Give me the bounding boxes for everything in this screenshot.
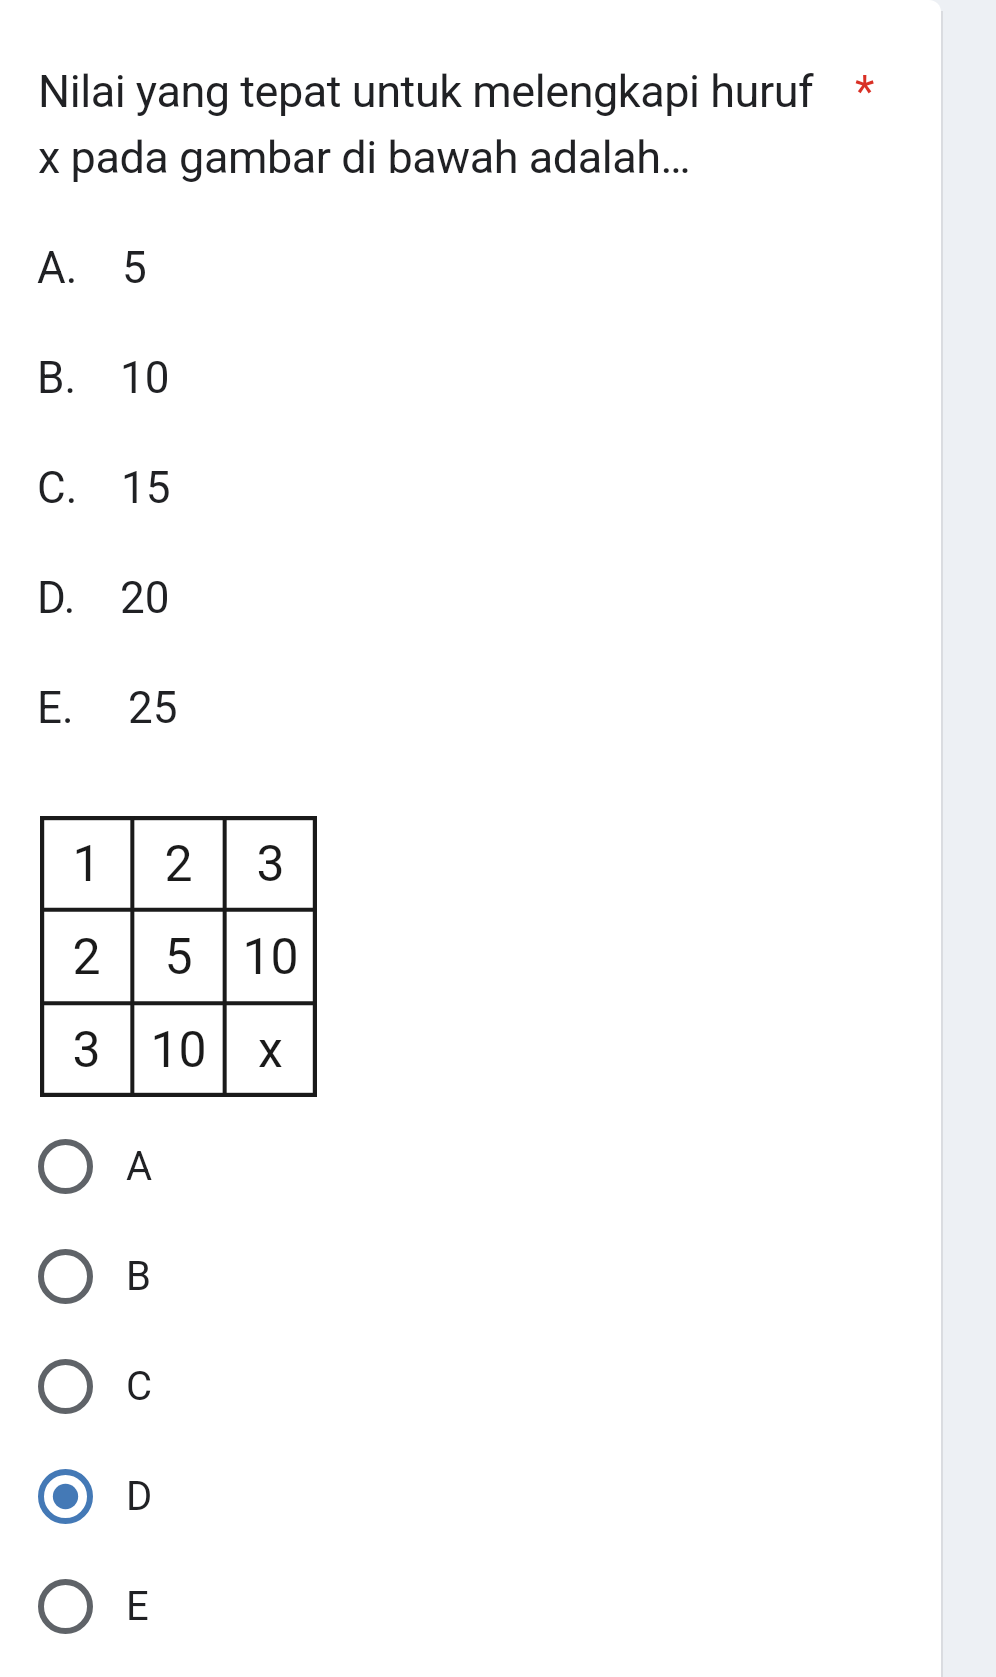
staticText: 20 bbox=[120, 572, 170, 624]
toggle[interactable]: Option E bbox=[0, 1553, 941, 1659]
staticText: 5 bbox=[164, 928, 193, 987]
staticText: B bbox=[126, 1253, 151, 1300]
staticText: E. bbox=[37, 682, 74, 734]
staticText: 3 bbox=[72, 1021, 101, 1080]
staticText: D bbox=[126, 1473, 153, 1520]
staticText: x bbox=[258, 1021, 283, 1080]
toggle[interactable]: Option D bbox=[0, 1443, 941, 1549]
toggle[interactable]: Option A bbox=[0, 1113, 941, 1219]
staticText: * bbox=[855, 65, 875, 118]
staticText: C bbox=[126, 1363, 153, 1410]
staticText: x pada gambar di bawah adalah… bbox=[38, 131, 691, 184]
staticText: A bbox=[126, 1143, 153, 1190]
staticText: 10 bbox=[242, 928, 299, 987]
toggle[interactable]: Option B bbox=[0, 1223, 941, 1329]
staticText: C. bbox=[37, 462, 78, 514]
staticText: 3 bbox=[256, 835, 285, 894]
staticText: 25 bbox=[128, 682, 178, 734]
staticText: 1 bbox=[72, 835, 101, 894]
staticText: Nilai yang tepat untuk melengkapi huruf bbox=[38, 65, 814, 118]
staticText: 2 bbox=[72, 928, 101, 987]
staticText: E bbox=[126, 1583, 149, 1630]
staticText: 15 bbox=[121, 462, 171, 514]
toggle[interactable]: Option C bbox=[0, 1333, 941, 1439]
staticText: D. bbox=[37, 572, 76, 624]
staticText: 5 bbox=[122, 242, 147, 294]
staticText: 10 bbox=[150, 1021, 207, 1080]
staticText: 2 bbox=[164, 835, 193, 894]
staticText: A. bbox=[37, 242, 78, 294]
staticText: 10 bbox=[120, 352, 170, 404]
staticText: B. bbox=[37, 352, 77, 404]
